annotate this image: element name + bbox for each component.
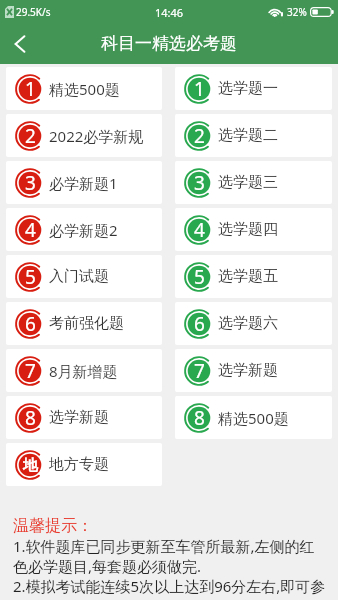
staticText: 精选500题 [218, 408, 289, 428]
staticText: 1.软件题库已同步更新至车管所最新,左侧的红 [13, 536, 315, 556]
staticText: 选学题五 [218, 267, 278, 286]
staticText: 5 [194, 264, 205, 290]
staticText: 29.5K/s [16, 5, 51, 19]
staticText: 7 [194, 358, 205, 384]
staticText: 必学新题1 [49, 173, 118, 193]
staticText: 2 [194, 123, 205, 149]
staticText: 4 [25, 217, 36, 243]
button[interactable]: 7 [175, 349, 332, 392]
staticText: 地方专题 [49, 455, 109, 474]
staticText: 地 [23, 456, 38, 475]
staticText: 8 [25, 405, 36, 431]
staticText: 1 [25, 76, 36, 102]
button[interactable]: 1 [6, 67, 162, 110]
staticText: 选学题三 [218, 173, 278, 192]
button[interactable]: 6 [175, 302, 332, 345]
button[interactable]: 4 [6, 208, 162, 251]
staticText: 4 [194, 217, 205, 243]
button[interactable]: 4 [175, 208, 332, 251]
staticText: 科目一精选必考题 [101, 33, 237, 54]
staticText: 必学新题2 [49, 220, 118, 240]
staticText: 温馨提示： [13, 516, 93, 536]
button[interactable]: 5 [175, 255, 332, 298]
button[interactable]: 2 [175, 114, 332, 157]
staticText: 7 [25, 358, 36, 384]
staticText: 选学题二 [218, 126, 278, 145]
button[interactable]: Back [0, 24, 40, 64]
staticText: 入门试题 [49, 267, 109, 286]
staticText: 2022必学新规 [49, 126, 144, 146]
staticText: 14:46 [155, 5, 184, 20]
button[interactable]: 3 [175, 161, 332, 204]
staticText: 2.模拟考试能连续5次以上达到96分左右,即可参 [13, 576, 326, 596]
button[interactable]: 8 [6, 396, 162, 439]
staticText: 选学题四 [218, 220, 278, 239]
staticText: 色必学题目,每套题必须做完. [13, 556, 202, 576]
button[interactable]: 地 [6, 443, 162, 486]
staticText: 选学新题 [49, 408, 109, 427]
staticText: 32% [287, 5, 307, 19]
staticText: 3 [194, 170, 205, 196]
staticText: 选学题六 [218, 314, 278, 333]
staticText: 3 [25, 170, 36, 196]
staticText: 考前强化题 [49, 314, 124, 333]
staticText: 选学新题 [218, 361, 278, 380]
button[interactable]: 1 [175, 67, 332, 110]
staticText: 2 [25, 123, 36, 149]
staticText: 5 [25, 264, 36, 290]
staticText: 精选500题 [49, 79, 120, 99]
button[interactable]: 3 [6, 161, 162, 204]
staticText: 6 [25, 311, 36, 337]
staticText: 选学题一 [218, 79, 278, 98]
button[interactable]: 6 [6, 302, 162, 345]
button[interactable]: 7 [6, 349, 162, 392]
staticText: 1 [194, 76, 205, 102]
staticText: 6 [194, 311, 205, 337]
staticText: 8月新增题 [49, 361, 118, 381]
button[interactable]: 2 [6, 114, 162, 157]
staticText: 8 [194, 405, 205, 431]
button[interactable]: 8 [175, 396, 332, 439]
button[interactable]: 5 [6, 255, 162, 298]
